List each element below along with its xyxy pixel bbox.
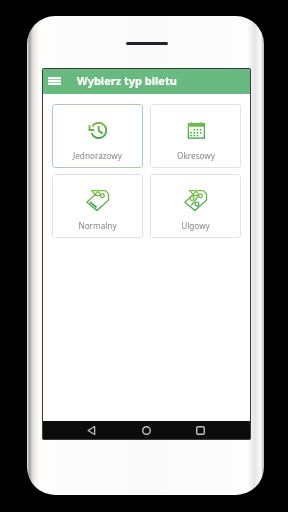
button[interactable]: Menu	[45, 72, 63, 90]
staticText: Jednorazowy	[73, 150, 122, 161]
button[interactable]: Back	[81, 421, 101, 439]
button[interactable]: Normalny	[52, 174, 143, 238]
staticText: Ulgowy	[181, 220, 210, 231]
staticText: Wybierz typ biletu	[77, 73, 177, 88]
staticText: Okresowy	[177, 150, 215, 161]
button[interactable]: Recents	[190, 421, 210, 439]
button[interactable]: Home	[136, 421, 156, 439]
staticText: Normalny	[78, 220, 117, 231]
button[interactable]: Jednorazowy	[52, 104, 143, 168]
button[interactable]: Okresowy	[150, 104, 241, 168]
button[interactable]: Ulgowy	[150, 174, 241, 238]
